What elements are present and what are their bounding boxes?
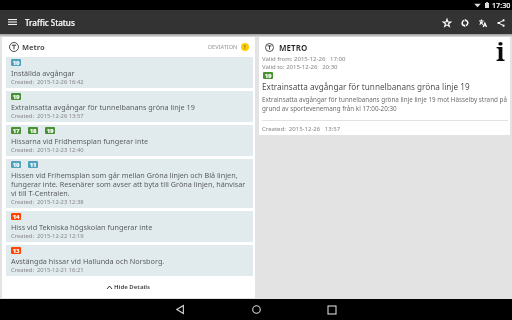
staticText: Valid to: 2015-12-26 20:30 <box>262 63 338 71</box>
staticText: Hide Details <box>114 283 151 291</box>
button[interactable]: Refresh <box>456 10 474 34</box>
staticText: Inställda avgångar <box>11 68 75 78</box>
button[interactable]: 10 <box>6 57 253 88</box>
button[interactable]: Recent apps <box>302 299 362 320</box>
staticText: 17:30 <box>492 0 511 10</box>
staticText: Hissen vid Frihemsplan som går mellan Gr… <box>11 170 252 198</box>
button[interactable]: Favorite <box>438 10 456 34</box>
button[interactable]: 10 <box>6 159 253 208</box>
staticText: i <box>496 33 506 61</box>
staticText: 19 <box>47 127 54 134</box>
staticText: Avstängda hissar vid Hallunda och Norsbo… <box>11 256 165 266</box>
button[interactable]: Home <box>226 299 286 320</box>
staticText: Created: 2015-12-21 16:21 <box>11 266 84 274</box>
staticText: Hissarna vid Fridhemsplan fungerar inte <box>11 136 149 146</box>
button[interactable]: Metro <box>9 37 249 57</box>
staticText: Valid from: 2015-12-26 17:00 <box>262 55 346 63</box>
staticText: Created: 2015-12-23 12:40 <box>11 146 84 154</box>
staticText: Created: 2015-12-22 12:19 <box>11 232 84 240</box>
staticText: Created: 2015-12-23 12:38 <box>11 198 84 206</box>
button[interactable]: 13 <box>6 245 253 276</box>
staticText: Extrainsatta avgångar för tunnelbanans g… <box>262 81 470 92</box>
button[interactable]: 17 <box>6 125 253 156</box>
button[interactable]: Back <box>150 299 210 320</box>
staticText: ! <box>244 43 246 51</box>
staticText: Hiss vid Tekniska högskolan fungerar int… <box>11 222 153 232</box>
staticText: DEVIATION <box>208 43 238 51</box>
button[interactable]: Information <box>490 33 512 61</box>
staticText: 10 <box>13 161 20 168</box>
button[interactable]: Hide Details <box>2 276 255 298</box>
button[interactable]: 19 <box>6 91 253 122</box>
staticText: 19 <box>265 72 272 79</box>
staticText: Created: 2015-12-26 16:42 <box>11 78 84 86</box>
staticText: METRO <box>279 42 308 53</box>
button[interactable]: Share <box>492 10 510 34</box>
staticText: 10 <box>13 59 20 66</box>
staticText: 19 <box>13 93 20 100</box>
button[interactable]: 14 <box>6 211 253 242</box>
button[interactable]: Translate <box>474 10 492 34</box>
staticText: Metro <box>22 42 45 52</box>
staticText: Created: 2015-12-26 13:57 <box>11 112 84 120</box>
staticText: 11 <box>30 161 37 168</box>
button[interactable]: Open navigation drawer <box>0 10 25 34</box>
staticText: 13 <box>13 247 20 254</box>
staticText: Traffic Status <box>25 17 75 28</box>
staticText: Extrainsatta avgångar för tunnelbanans g… <box>262 95 508 113</box>
staticText: 17 <box>13 127 20 134</box>
staticText: 18 <box>30 127 37 134</box>
staticText: Created: 2015-12-26 13:57 <box>262 125 341 133</box>
staticText: 14 <box>13 213 20 220</box>
staticText: Extrainsatta avgångar för tunnelbanans g… <box>11 102 195 112</box>
